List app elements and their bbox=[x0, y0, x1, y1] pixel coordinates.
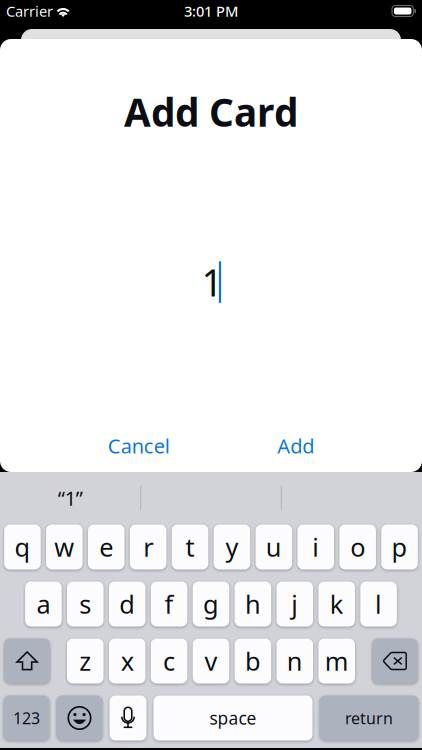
staticText: 3:01 PM bbox=[184, 1, 238, 21]
staticText: h bbox=[245, 587, 261, 621]
button[interactable]: return bbox=[319, 695, 418, 740]
staticText: e bbox=[99, 530, 113, 564]
staticText: Add bbox=[277, 432, 314, 459]
staticText: x bbox=[121, 644, 134, 678]
button[interactable]: m bbox=[318, 638, 355, 683]
button[interactable]: g bbox=[193, 581, 229, 626]
staticText: w bbox=[54, 530, 74, 564]
button[interactable]: d bbox=[109, 581, 145, 626]
staticText: y bbox=[225, 530, 238, 564]
button[interactable]: Dictation bbox=[109, 695, 146, 740]
staticText: t bbox=[185, 530, 194, 564]
button[interactable]: Add bbox=[277, 432, 314, 459]
button[interactable]: Delete bbox=[372, 638, 418, 683]
staticText: c bbox=[163, 644, 175, 678]
button[interactable]: x bbox=[109, 638, 145, 683]
button[interactable]: Cancel bbox=[108, 432, 170, 459]
button[interactable]: c bbox=[151, 638, 187, 683]
staticText: d bbox=[119, 587, 135, 621]
staticText: u bbox=[266, 530, 282, 564]
staticText: s bbox=[79, 587, 91, 621]
staticText: n bbox=[287, 644, 303, 678]
button[interactable]: 123 bbox=[3, 695, 49, 740]
button[interactable]: e bbox=[88, 524, 124, 569]
button[interactable]: n bbox=[276, 638, 313, 683]
staticText: Add Card bbox=[124, 86, 298, 137]
button[interactable]: h bbox=[235, 581, 271, 626]
staticText: “1” bbox=[58, 485, 83, 511]
staticText: r bbox=[143, 530, 153, 564]
button[interactable]: o bbox=[339, 524, 376, 569]
button[interactable]: z bbox=[67, 638, 104, 683]
button[interactable]: q bbox=[4, 524, 41, 569]
button[interactable]: s bbox=[67, 581, 104, 626]
button[interactable]: u bbox=[255, 524, 292, 569]
staticText: b bbox=[245, 644, 261, 678]
button[interactable]: l bbox=[360, 581, 397, 626]
staticText: f bbox=[165, 587, 174, 621]
button[interactable]: Emoji bbox=[56, 695, 102, 740]
staticText: Cancel bbox=[108, 432, 170, 459]
staticText: g bbox=[203, 587, 219, 621]
staticText: v bbox=[204, 644, 217, 678]
button[interactable]: t bbox=[172, 524, 208, 569]
staticText: 123 bbox=[13, 707, 40, 729]
staticText: k bbox=[330, 587, 344, 621]
button[interactable]: r bbox=[130, 524, 166, 569]
button[interactable]: w bbox=[46, 524, 83, 569]
button[interactable]: k bbox=[318, 581, 355, 626]
staticText: i bbox=[312, 530, 319, 564]
button[interactable]: i bbox=[297, 524, 334, 569]
staticText: l bbox=[375, 587, 382, 621]
staticText: Carrier bbox=[6, 1, 53, 21]
button[interactable]: a bbox=[25, 581, 62, 626]
button[interactable]: space bbox=[153, 695, 312, 740]
staticText: j bbox=[291, 587, 298, 621]
button[interactable]: p bbox=[381, 524, 418, 569]
staticText: return bbox=[345, 707, 393, 729]
button[interactable]: Shift bbox=[4, 638, 50, 683]
staticText: a bbox=[36, 587, 50, 621]
staticText: o bbox=[350, 530, 365, 564]
staticText: q bbox=[14, 530, 30, 564]
button[interactable]: y bbox=[214, 524, 250, 569]
button[interactable]: f bbox=[151, 581, 187, 626]
staticText: m bbox=[325, 644, 349, 678]
staticText: z bbox=[79, 644, 91, 678]
staticText: p bbox=[391, 530, 407, 564]
button[interactable]: j bbox=[276, 581, 313, 626]
button[interactable]: v bbox=[193, 638, 229, 683]
button[interactable]: b bbox=[235, 638, 271, 683]
staticText: space bbox=[209, 706, 256, 729]
staticText: 1 bbox=[201, 257, 222, 307]
